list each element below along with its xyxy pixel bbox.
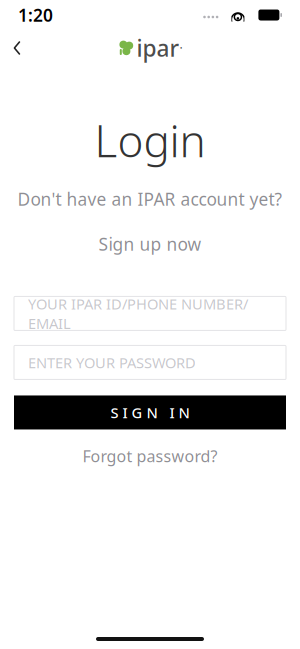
staticText: · — [179, 40, 182, 56]
button[interactable]: Forgot password? — [72, 440, 227, 472]
button[interactable]: Back — [0, 31, 34, 65]
button[interactable]: Sign up now — [88, 228, 211, 259]
staticText: Forgot password? — [82, 445, 217, 467]
button[interactable]: YOUR IPAR ID/PHONE NUMBER/EMAIL — [14, 296, 286, 330]
staticText: Sign up now — [98, 232, 201, 255]
button[interactable]: ENTER YOUR PASSWORD — [14, 345, 286, 379]
button[interactable]: S I G N I N — [14, 395, 286, 429]
staticText: Don't have an IPAR account yet? — [17, 187, 282, 210]
staticText: Login — [94, 111, 205, 169]
staticText: S I G N I N — [110, 403, 189, 422]
staticText: ENTER YOUR PASSWORD — [28, 353, 196, 372]
staticText: ipar — [136, 33, 179, 63]
staticText: 1:20 — [18, 3, 53, 26]
staticText: YOUR IPAR ID/PHONE NUMBER/EMAIL — [28, 294, 248, 333]
